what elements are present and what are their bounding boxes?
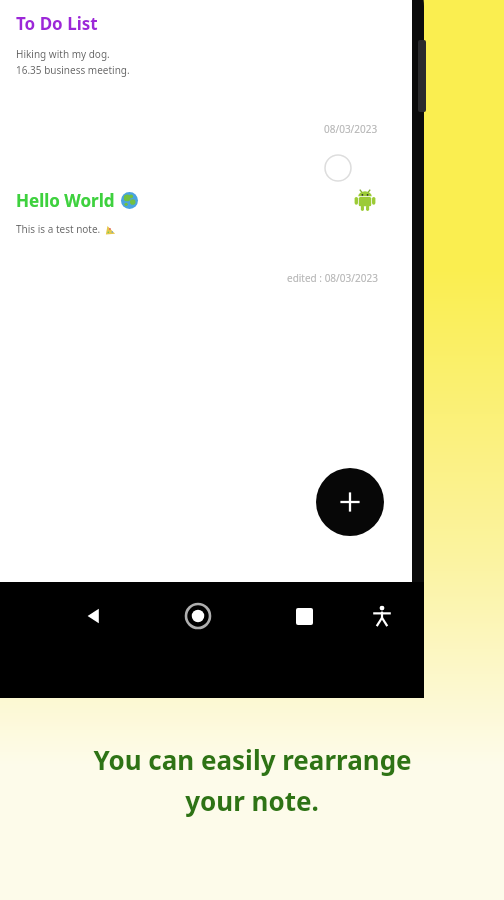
- button[interactable]: Back: [66, 588, 122, 644]
- staticText: 08/03/2023: [324, 122, 378, 136]
- staticText: edited : 08/03/2023: [287, 271, 378, 285]
- button[interactable]: Accessibility: [354, 588, 410, 644]
- button[interactable]: To Do List: [0, 0, 396, 146]
- button[interactable]: Hello World: [0, 167, 396, 295]
- staticText: This is a test note.: [16, 222, 101, 236]
- staticText: Hiking with my dog.: [16, 47, 110, 61]
- button[interactable]: Home: [170, 588, 226, 644]
- staticText: your note.: [185, 783, 319, 818]
- staticText: Hello World: [16, 189, 115, 212]
- staticText: 16.35 business meeting.: [16, 63, 130, 77]
- button[interactable]: Recent apps: [276, 588, 332, 644]
- staticText: To Do List: [16, 12, 98, 35]
- button[interactable]: Add note: [316, 468, 384, 536]
- staticText: You can easily rearrange: [93, 742, 412, 777]
